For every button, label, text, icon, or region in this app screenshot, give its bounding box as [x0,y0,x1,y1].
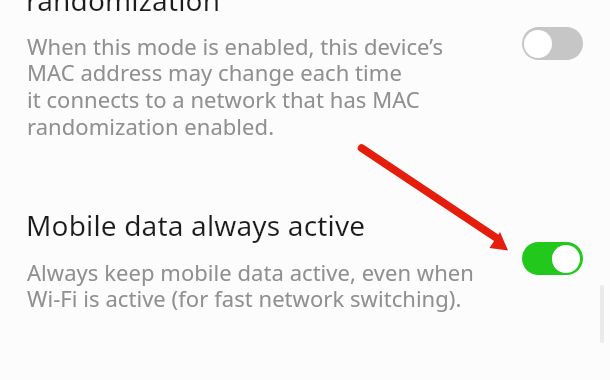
button[interactable]: Mobile data always active [0,196,610,324]
button[interactable]: randomization [0,0,610,180]
button[interactable]: Mobile data always active switch, on [522,242,583,275]
staticText: When this mode is enabled, this device’s… [27,31,444,142]
button[interactable]: MAC randomization switch, off [522,27,583,60]
staticText: Mobile data always active [26,206,366,244]
staticText: Always keep mobile data active, even whe… [27,257,474,314]
staticText: randomization [26,0,221,19]
